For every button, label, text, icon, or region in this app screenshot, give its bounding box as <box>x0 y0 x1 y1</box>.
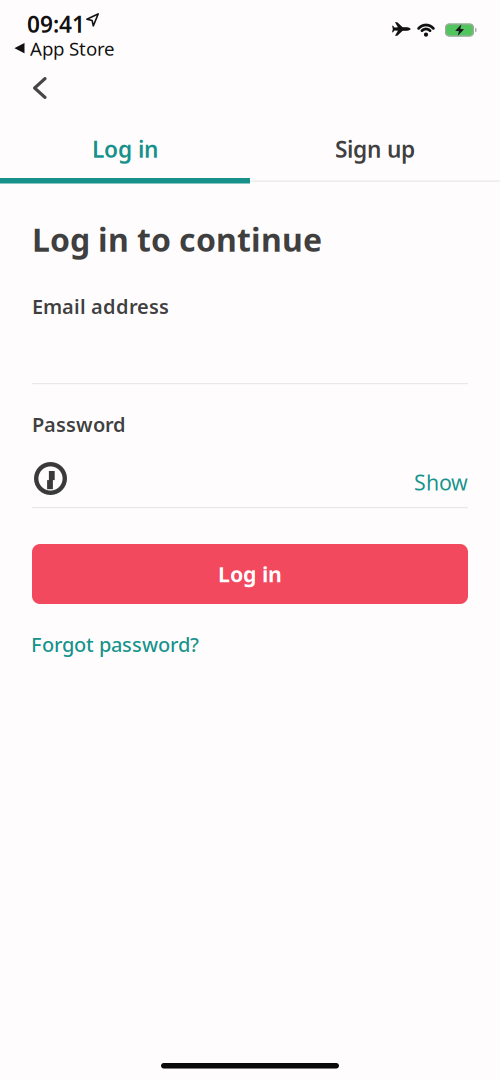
button[interactable]: App Store <box>14 36 115 61</box>
button[interactable] <box>34 462 67 495</box>
staticText: Sign up <box>335 134 415 164</box>
staticText: Log in <box>218 560 282 588</box>
button[interactable]: Show <box>368 468 468 496</box>
staticText: Log in to continue <box>32 218 322 260</box>
button[interactable] <box>25 69 54 107</box>
staticText: Forgot password? <box>31 631 199 658</box>
button[interactable]: Log in <box>0 129 250 169</box>
button[interactable]: Sign up <box>250 129 500 169</box>
staticText: Log in <box>92 134 158 164</box>
button[interactable]: Forgot password? <box>31 631 199 658</box>
staticText: Email address <box>32 293 169 320</box>
button[interactable]: Log in <box>32 544 468 604</box>
staticText: Show <box>414 468 468 496</box>
staticText: 09:41 <box>27 9 85 39</box>
staticText: Password <box>32 411 126 438</box>
staticText: App Store <box>30 36 115 61</box>
